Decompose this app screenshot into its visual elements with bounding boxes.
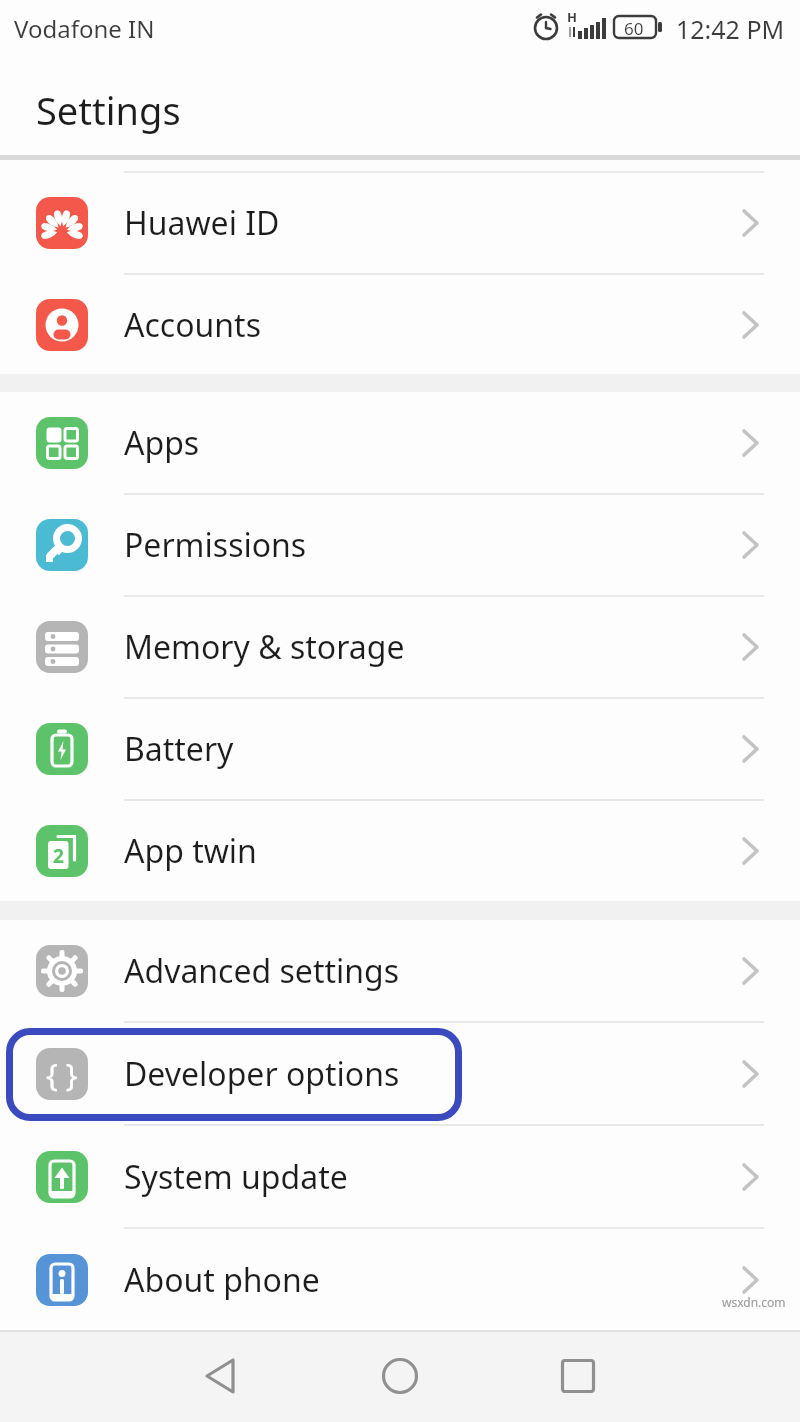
button[interactable]: System update bbox=[0, 1126, 800, 1227]
staticText: Advanced settings bbox=[124, 949, 740, 993]
button[interactable]: Memory & storage bbox=[0, 597, 800, 697]
button[interactable] bbox=[518, 1330, 638, 1422]
staticText: App twin bbox=[124, 829, 740, 873]
staticText: Apps bbox=[124, 421, 740, 465]
staticText: Battery bbox=[124, 727, 740, 771]
button[interactable]: Battery bbox=[0, 699, 800, 799]
staticText: Settings bbox=[36, 84, 181, 136]
button[interactable]: { } bbox=[0, 1023, 800, 1124]
button[interactable]: Advanced settings bbox=[0, 920, 800, 1021]
staticText: Huawei ID bbox=[124, 201, 740, 245]
button[interactable]: Huawei ID bbox=[0, 173, 800, 273]
staticText: 12:42 PM bbox=[676, 12, 785, 46]
button[interactable]: Permissions bbox=[0, 495, 800, 595]
staticText: 2 bbox=[53, 843, 64, 869]
staticText: Vodafone IN bbox=[14, 12, 155, 45]
staticText: 60 bbox=[624, 17, 644, 40]
button[interactable]: 2 bbox=[0, 801, 800, 901]
staticText: wsxdn.com bbox=[722, 1294, 786, 1310]
button[interactable] bbox=[162, 1330, 282, 1422]
staticText: System update bbox=[124, 1155, 740, 1199]
staticText: Memory & storage bbox=[124, 625, 740, 669]
button[interactable]: Apps bbox=[0, 392, 800, 493]
staticText: { } bbox=[46, 1053, 78, 1095]
staticText: Accounts bbox=[124, 303, 740, 347]
button[interactable]: About phone bbox=[0, 1229, 800, 1330]
staticText: Developer options bbox=[124, 1052, 740, 1096]
staticText: About phone bbox=[124, 1258, 740, 1302]
staticText: H bbox=[567, 8, 577, 26]
staticText: Permissions bbox=[124, 523, 740, 567]
button[interactable]: Accounts bbox=[0, 275, 800, 374]
button[interactable] bbox=[340, 1330, 460, 1422]
